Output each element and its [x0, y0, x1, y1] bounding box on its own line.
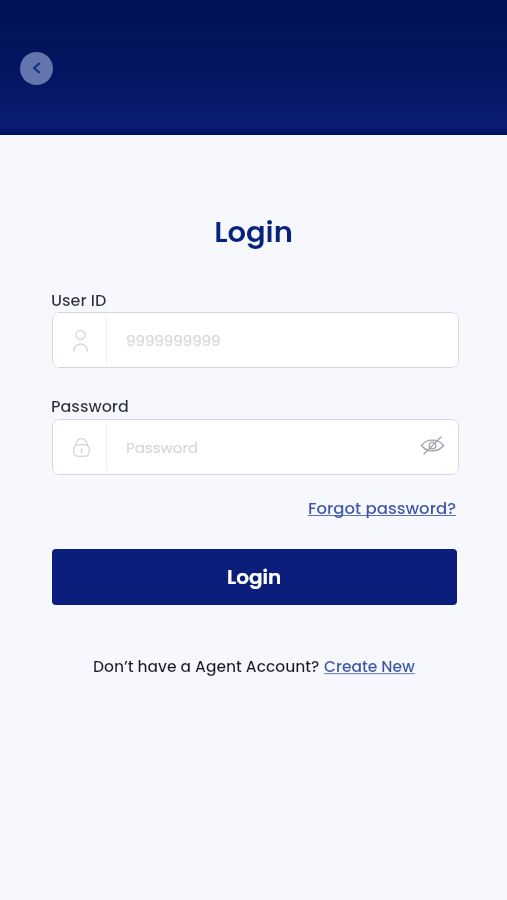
staticText: User ID	[51, 289, 107, 311]
staticText: Login	[0, 212, 507, 253]
button[interactable]: Show password	[420, 435, 444, 459]
button[interactable]: Back	[20, 52, 53, 85]
staticText: Create New	[324, 656, 415, 678]
button[interactable]: Login	[52, 549, 457, 605]
staticText: Don’t have a Agent Account?	[93, 656, 324, 678]
button[interactable]: 9999999999	[52, 312, 459, 368]
button[interactable]: Forgot password?	[308, 497, 457, 520]
button[interactable]: Create New	[324, 656, 415, 678]
staticText: Password	[126, 437, 199, 458]
staticText: Password	[51, 395, 129, 417]
staticText: Forgot password?	[308, 497, 457, 520]
staticText: Login	[227, 563, 282, 591]
button[interactable]: Password	[52, 419, 459, 475]
staticText: 9999999999	[126, 330, 221, 351]
